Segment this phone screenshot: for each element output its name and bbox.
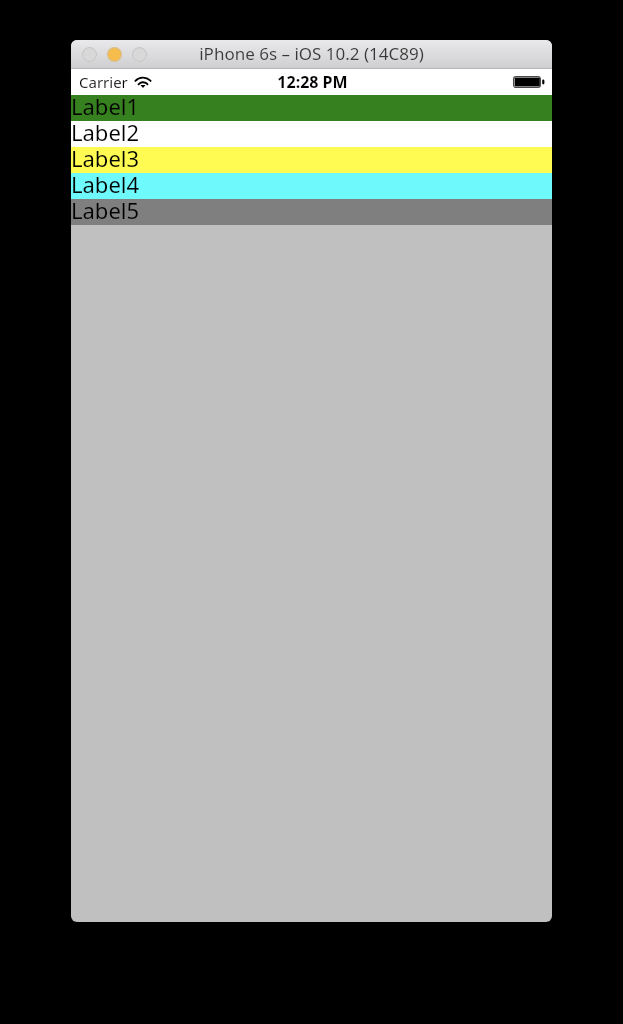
staticText: Carrier — [79, 72, 128, 92]
staticText: Label1 — [71, 91, 140, 117]
button[interactable]: Label4 — [71, 173, 552, 199]
staticText: Label5 — [71, 195, 140, 221]
button[interactable]: Close — [82, 47, 97, 62]
other: Battery full — [513, 76, 544, 88]
button[interactable]: Label5 — [71, 199, 552, 225]
staticText: iPhone 6s – iOS 10.2 (14C89) — [71, 42, 552, 65]
staticText: Label4 — [71, 169, 140, 195]
other: Wi-Fi signal — [133, 74, 153, 90]
button[interactable]: Label3 — [71, 147, 552, 173]
staticText: Label3 — [71, 143, 140, 169]
staticText: Label2 — [71, 117, 140, 143]
button[interactable]: Zoom — [132, 47, 147, 62]
staticText: 12:28 PM — [72, 71, 552, 93]
button[interactable]: Label1 — [71, 95, 552, 121]
button[interactable]: Minimize — [107, 47, 122, 62]
button[interactable]: Label2 — [71, 121, 552, 147]
